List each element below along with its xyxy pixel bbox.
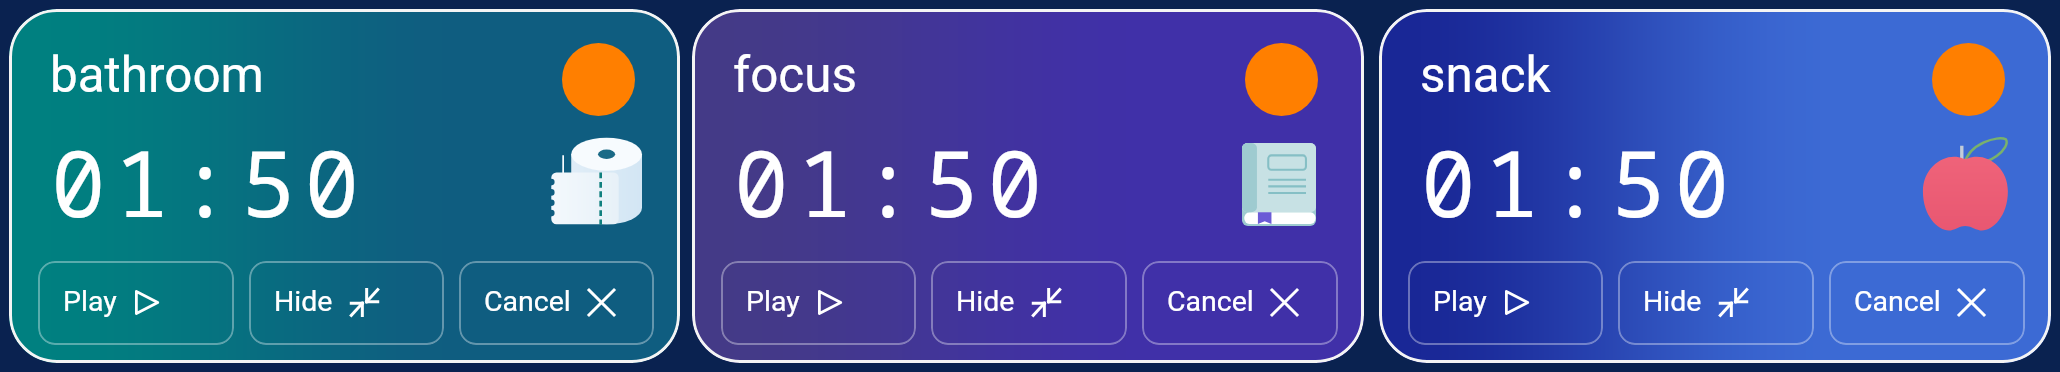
staticText: Play [1433,285,1487,318]
button[interactable]: Play [721,261,916,345]
staticText: Cancel [1854,285,1941,318]
staticText: 01:50 [734,120,1052,244]
staticText: Hide [1643,285,1702,318]
staticText: 01:50 [1421,120,1739,244]
button[interactable]: Play [1408,261,1603,345]
button[interactable]: bathroom [9,9,680,363]
staticText: Hide [956,285,1015,318]
button[interactable]: Cancel [459,261,654,345]
staticText: Play [63,285,117,318]
staticText: Hide [274,285,333,318]
staticText: focus [733,46,857,104]
button[interactable]: Hide [931,261,1127,345]
button[interactable]: focus [692,9,1364,363]
button[interactable]: Play [38,261,234,345]
staticText: bathroom [50,46,264,104]
button[interactable]: snack [1379,9,2051,363]
staticText: snack [1420,46,1551,104]
staticText: Cancel [484,285,571,318]
button[interactable]: Cancel [1829,261,2025,345]
button[interactable]: Hide [249,261,444,345]
staticText: Play [746,285,800,318]
button[interactable]: Cancel [1142,261,1338,345]
button[interactable]: Hide [1618,261,1814,345]
staticText: 01:50 [51,120,369,244]
staticText: Cancel [1167,285,1254,318]
